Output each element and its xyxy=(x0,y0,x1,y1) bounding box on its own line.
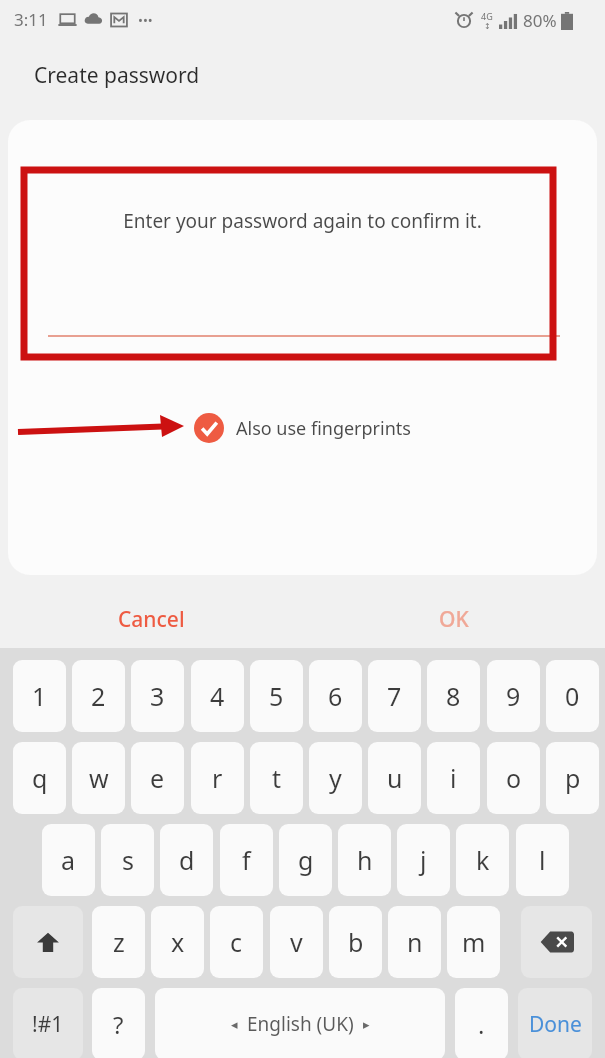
staticText: r xyxy=(212,761,223,795)
button[interactable]: g xyxy=(279,824,332,896)
staticText: c xyxy=(230,925,243,959)
button[interactable]: y xyxy=(309,742,362,814)
button[interactable]: d xyxy=(160,824,213,896)
button[interactable]: t xyxy=(250,742,303,814)
button[interactable]: x xyxy=(151,906,204,978)
button[interactable]: i xyxy=(427,742,480,814)
button[interactable]: 2 xyxy=(72,660,125,732)
button[interactable]: n xyxy=(388,906,441,978)
button[interactable] xyxy=(48,335,560,337)
button[interactable]: Done xyxy=(518,988,592,1058)
staticText: k xyxy=(476,843,490,877)
button[interactable]: j xyxy=(397,824,450,896)
staticText: q xyxy=(32,761,48,795)
button[interactable]: 4 xyxy=(191,660,244,732)
button[interactable]: w xyxy=(72,742,125,814)
staticText: u xyxy=(387,761,403,795)
button[interactable]: 7 xyxy=(368,660,421,732)
button[interactable]: 8 xyxy=(427,660,480,732)
staticText: w xyxy=(89,761,109,795)
staticText: x xyxy=(171,925,185,959)
staticText: Also use fingerprints xyxy=(236,416,411,441)
staticText: 4G xyxy=(481,10,493,22)
staticText: Create password xyxy=(34,61,200,90)
staticText: 8 xyxy=(446,679,461,713)
staticText: Cancel xyxy=(118,605,185,634)
staticText: ••• xyxy=(138,11,153,29)
staticText: f xyxy=(242,843,251,877)
button[interactable]: p xyxy=(546,742,599,814)
button[interactable]: !#1 xyxy=(13,988,83,1058)
staticText: g xyxy=(298,843,314,877)
staticText: n xyxy=(407,925,423,959)
staticText: t xyxy=(272,761,282,795)
staticText: 80% xyxy=(523,9,557,32)
staticText: 5 xyxy=(269,679,284,713)
button[interactable]: 0 xyxy=(546,660,599,732)
staticText: y xyxy=(329,761,342,795)
staticText: 7 xyxy=(387,679,402,713)
button[interactable]: OK xyxy=(302,590,605,648)
button[interactable]: k xyxy=(456,824,509,896)
button[interactable]: Space xyxy=(155,988,445,1058)
button[interactable]: e xyxy=(131,742,184,814)
staticText: a xyxy=(61,843,76,877)
staticText: English (UK) xyxy=(247,1011,354,1037)
button[interactable]: z xyxy=(92,906,145,978)
button[interactable]: v xyxy=(270,906,323,978)
button[interactable]: ? xyxy=(92,988,145,1058)
staticText: 0 xyxy=(565,679,580,713)
staticText: l xyxy=(539,843,546,877)
button[interactable]: 1 xyxy=(13,660,66,732)
button[interactable]: f xyxy=(220,824,273,896)
staticText: ↕ xyxy=(484,22,491,31)
staticText: e xyxy=(150,761,165,795)
button[interactable]: l xyxy=(516,824,569,896)
staticText: Enter your password again to confirm it. xyxy=(123,208,482,234)
staticText: i xyxy=(450,761,457,795)
staticText: 6 xyxy=(328,679,343,713)
staticText: ▸ xyxy=(363,1017,370,1032)
staticText: p xyxy=(565,761,581,795)
staticText: 3 xyxy=(150,679,165,713)
staticText: d xyxy=(179,843,195,877)
staticText: Done xyxy=(529,1010,582,1039)
button[interactable]: c xyxy=(210,906,263,978)
button[interactable]: m xyxy=(447,906,500,978)
staticText: o xyxy=(506,761,522,795)
staticText: ◂ xyxy=(231,1017,238,1032)
staticText: z xyxy=(113,925,125,959)
staticText: 3:11 xyxy=(14,8,48,31)
button[interactable]: Shift xyxy=(13,906,83,978)
button[interactable]: 6 xyxy=(309,660,362,732)
button[interactable]: s xyxy=(101,824,154,896)
button[interactable]: o xyxy=(487,742,540,814)
button[interactable]: Also use fingerprints xyxy=(8,413,597,443)
staticText: j xyxy=(420,843,427,877)
button[interactable]: 5 xyxy=(250,660,303,732)
staticText: v xyxy=(290,925,303,959)
staticText: m xyxy=(462,925,486,959)
staticText: 9 xyxy=(506,679,521,713)
button[interactable]: a xyxy=(42,824,95,896)
button[interactable]: b xyxy=(329,906,382,978)
staticText: h xyxy=(357,843,373,877)
button[interactable]: . xyxy=(455,988,508,1058)
staticText: 1 xyxy=(32,679,47,713)
staticText: 2 xyxy=(91,679,106,713)
staticText: s xyxy=(122,843,134,877)
staticText: !#1 xyxy=(32,1010,64,1039)
button[interactable]: 9 xyxy=(487,660,540,732)
staticText: OK xyxy=(439,605,469,634)
button[interactable]: q xyxy=(13,742,66,814)
button[interactable]: 3 xyxy=(131,660,184,732)
staticText: . xyxy=(478,1008,485,1041)
button[interactable]: r xyxy=(191,742,244,814)
button[interactable]: Cancel xyxy=(0,590,302,648)
staticText: ? xyxy=(113,1008,124,1041)
staticText: b xyxy=(348,925,364,959)
button[interactable]: u xyxy=(368,742,421,814)
button[interactable]: Backspace xyxy=(521,906,592,978)
staticText: 4 xyxy=(210,679,225,713)
button[interactable]: h xyxy=(338,824,391,896)
